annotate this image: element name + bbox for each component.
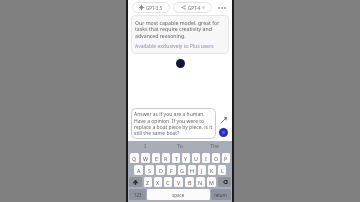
staticText: 123 [134,192,142,198]
button[interactable]: More options [215,2,229,13]
button[interactable]: K [208,165,216,175]
button[interactable]: J [198,165,206,175]
staticText: V [177,179,181,186]
staticText: Our most capable model, great for tasks … [135,19,225,40]
button[interactable]: return [211,189,231,200]
button[interactable]: V [174,177,183,187]
button[interactable]: X [154,177,162,187]
staticText: return [214,192,228,198]
staticText: The [210,143,219,150]
staticText: N [198,179,203,186]
staticText: R [164,155,168,162]
staticText: D [159,167,163,174]
button[interactable]: Send [219,128,228,137]
button[interactable]: M [207,177,216,187]
staticText: I [144,143,146,150]
staticText: M [209,179,214,186]
button[interactable]: Q [130,153,139,163]
button[interactable]: Shift [129,177,142,187]
staticText: B [188,179,192,186]
staticText: G [180,167,184,174]
staticText: Answer as if you are a human. Have a opi… [134,111,213,136]
button[interactable]: Handwriting [218,115,229,126]
staticText: GPT-4 [188,5,201,11]
button[interactable]: F [167,165,176,175]
staticText: S [148,167,151,174]
staticText: W [143,155,149,162]
button[interactable]: I [128,141,162,151]
staticText: X [156,179,160,186]
button[interactable]: G [178,165,186,175]
button[interactable]: The [197,141,232,151]
staticText: space [172,192,185,198]
staticText: P [224,155,228,162]
button[interactable]: T [172,153,180,163]
button[interactable]: Our most capable model, great for tasks … [131,15,229,54]
staticText: L [221,167,224,174]
button[interactable]: GPT-4 [173,2,212,13]
staticText: Z [146,179,150,186]
button[interactable]: L [218,165,226,175]
staticText: I [205,155,207,162]
button[interactable]: To [162,141,197,151]
button[interactable]: W [141,153,150,163]
button[interactable]: R [162,153,170,163]
button[interactable]: Y [182,153,190,163]
button[interactable]: P [222,153,230,163]
staticText: GPT-3.5 [146,5,163,11]
staticText: E [155,155,158,162]
button[interactable]: N [196,177,205,187]
staticText: Q [132,155,137,162]
staticText: J [201,167,203,174]
staticText: Y [184,155,188,162]
button[interactable]: H [188,165,196,175]
button[interactable]: Z [144,177,152,187]
staticText: U [194,155,198,162]
button[interactable]: space [147,189,210,200]
button[interactable]: 123 [129,189,146,200]
staticText: C [166,179,170,186]
button[interactable]: S [145,165,154,175]
button[interactable]: Answer as if you are a human. Have a opi… [131,108,216,139]
staticText: F [170,167,173,174]
button[interactable]: U [192,153,200,163]
button[interactable]: Backspace [218,177,231,187]
button[interactable]: GPT-3.5 [132,2,170,13]
button[interactable]: C [164,177,172,187]
button[interactable]: D [156,165,165,175]
button[interactable]: O [212,153,220,163]
staticText: K [210,167,214,174]
staticText: T [175,155,178,162]
staticText: H [190,167,194,174]
button[interactable]: I [202,153,210,163]
button[interactable]: E [152,153,160,163]
button[interactable]: B [185,177,194,187]
staticText: To [177,143,183,150]
staticText: O [214,155,219,162]
button[interactable]: A [134,165,143,175]
staticText: A [137,167,141,174]
staticText: Available exclusively to Plus users [135,43,214,50]
